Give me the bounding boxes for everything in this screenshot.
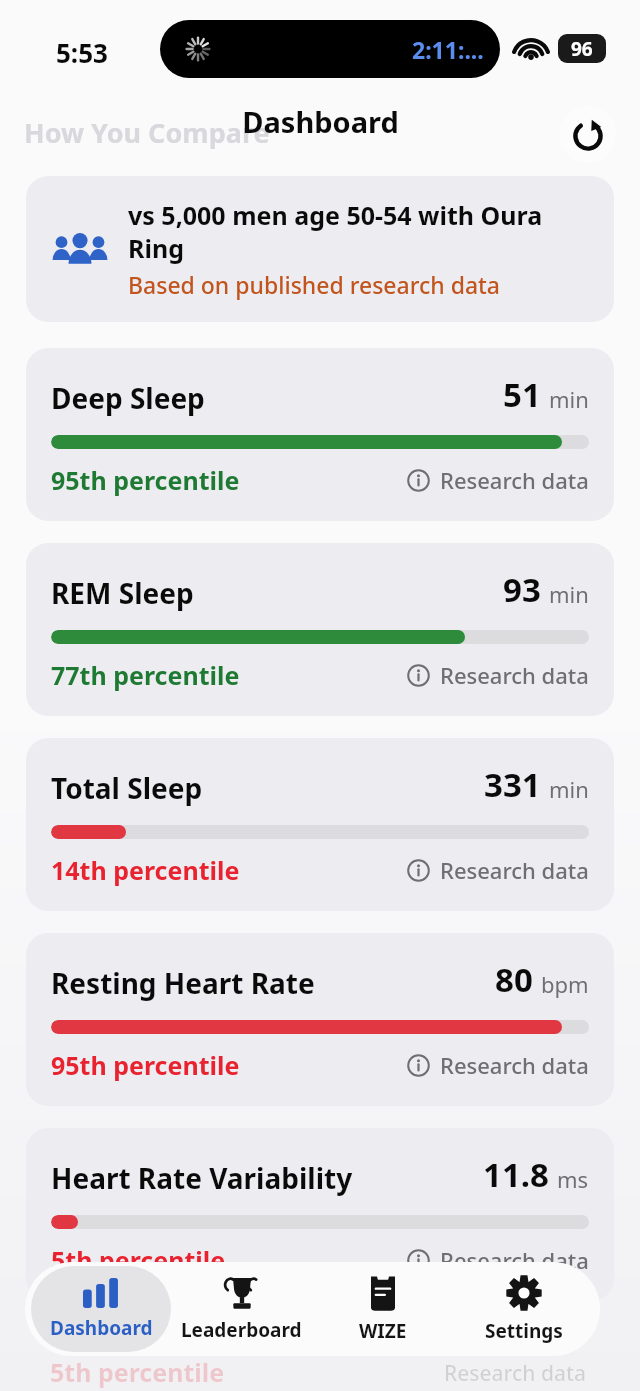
staticText: REM Sleep: [51, 574, 194, 612]
button[interactable]: Dashboard: [31, 1266, 171, 1352]
staticText: min: [549, 774, 589, 804]
staticText: 95th percentile: [51, 463, 240, 497]
staticText: min: [549, 579, 589, 609]
staticText: 80: [495, 957, 533, 1002]
staticText: 96: [571, 36, 593, 62]
button[interactable]: Leaderboard: [171, 1266, 312, 1352]
staticText: 11.8: [483, 1152, 549, 1197]
staticText: Dashboard: [50, 1315, 153, 1341]
button[interactable]: Heart Rate Variability: [26, 1128, 614, 1301]
staticText: 51: [503, 372, 541, 417]
button[interactable]: Deep Sleep: [26, 348, 614, 521]
staticText: vs 5,000 men age 50-54 with Oura Ring: [128, 198, 594, 265]
staticText: Heart Rate Variability: [51, 1159, 353, 1197]
staticText: 93: [503, 567, 541, 612]
staticText: Based on published research data: [128, 269, 501, 300]
staticText: ms: [557, 1164, 589, 1194]
button[interactable]: Settings: [453, 1266, 594, 1352]
staticText: 5:53: [56, 35, 108, 70]
staticText: 5th percentile: [50, 1355, 225, 1389]
staticText: Dashboard: [242, 102, 399, 141]
staticText: min: [549, 384, 589, 414]
staticText: bpm: [541, 969, 589, 999]
staticText: Research data: [440, 1245, 589, 1275]
button[interactable]: Resting Heart Rate: [26, 933, 614, 1106]
staticText: 14th percentile: [51, 853, 240, 887]
staticText: 77th percentile: [51, 658, 240, 692]
button[interactable]: Refresh: [559, 106, 616, 163]
button[interactable]: Total Sleep: [26, 738, 614, 911]
staticText: Research data: [440, 855, 589, 885]
staticText: How You Compare: [24, 114, 270, 151]
button[interactable]: REM Sleep: [26, 543, 614, 716]
staticText: Total Sleep: [51, 769, 203, 807]
staticText: Research data: [444, 1359, 587, 1388]
staticText: 331: [484, 762, 541, 807]
staticText: WIZE: [359, 1318, 407, 1344]
staticText: Deep Sleep: [51, 379, 205, 417]
button[interactable]: WIZE: [312, 1266, 453, 1352]
staticText: Research data: [440, 660, 589, 690]
staticText: Resting Heart Rate: [51, 964, 315, 1002]
staticText: Research data: [440, 1050, 589, 1080]
button[interactable]: vs 5,000 men age 50-54 with Oura Ring: [26, 176, 614, 322]
staticText: Leaderboard: [181, 1317, 302, 1343]
staticText: 5th percentile: [51, 1243, 226, 1277]
staticText: 95th percentile: [51, 1048, 240, 1082]
staticText: Research data: [440, 465, 589, 495]
staticText: 2:11:...: [412, 34, 484, 65]
staticText: Settings: [485, 1318, 563, 1344]
